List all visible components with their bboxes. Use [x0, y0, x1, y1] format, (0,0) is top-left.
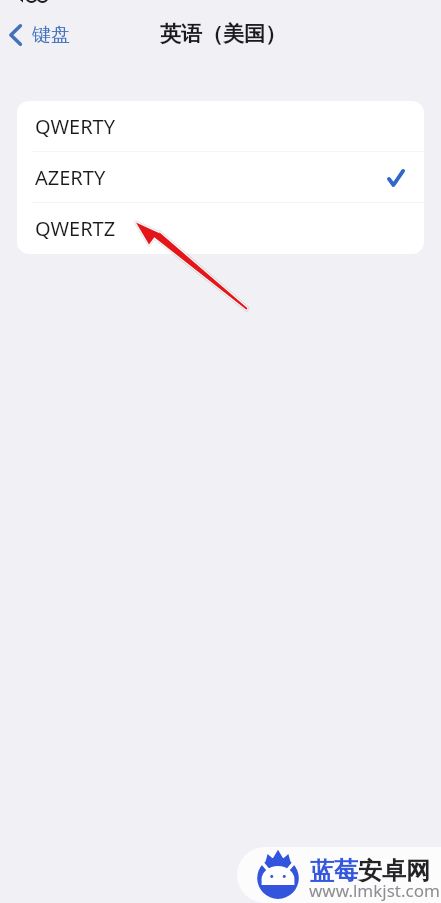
staticText: 英语（美国）	[160, 21, 286, 47]
staticText: QWERTY	[35, 113, 116, 140]
button[interactable]: QWERTZ	[17, 203, 424, 254]
button[interactable]: QWERTY	[17, 101, 424, 152]
button[interactable]: AZERTY	[17, 152, 424, 203]
button[interactable]: 蓝莓安卓网 www.lmkjst.com	[237, 847, 441, 903]
other: Selected	[387, 169, 405, 187]
button[interactable]: 键盘	[2, 17, 76, 53]
staticText: 键盘	[32, 23, 70, 47]
staticText: AZERTY	[35, 164, 106, 191]
staticText: QWERTZ	[35, 215, 116, 242]
staticText: www.lmkjst.com	[309, 879, 440, 902]
staticText: 蓝莓	[310, 856, 358, 886]
staticText: 安卓网	[358, 856, 430, 886]
